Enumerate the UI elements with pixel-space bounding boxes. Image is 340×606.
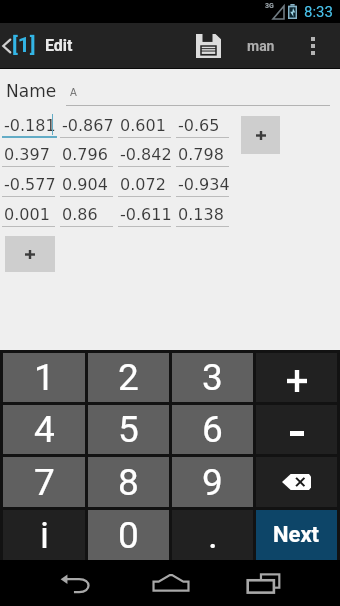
staticText: 0.397 <box>4 145 50 164</box>
staticText: [1] <box>12 33 36 58</box>
staticText: 0.072 <box>120 175 166 194</box>
button[interactable]: 1 <box>3 353 85 402</box>
staticText: Next <box>273 522 320 548</box>
staticText: -0.842 <box>120 145 172 164</box>
button[interactable]: 9 <box>172 457 253 507</box>
button[interactable]: Navigate up <box>0 23 46 68</box>
button[interactable]: 8 <box>88 457 169 507</box>
staticText: man <box>247 38 275 54</box>
button[interactable]: . <box>172 510 253 560</box>
staticText: 8:33 <box>304 3 333 21</box>
staticText: -0.65 <box>178 116 220 135</box>
button[interactable]: Next <box>256 510 337 560</box>
button[interactable]: 3 <box>172 353 253 402</box>
button[interactable]: 0.904 <box>60 172 116 200</box>
staticText: 3 <box>202 356 223 399</box>
staticText: 0.798 <box>178 145 224 164</box>
button[interactable]: 0.86 <box>60 202 116 230</box>
button[interactable]: -0.611 <box>118 202 174 230</box>
button[interactable]: Recent apps <box>228 562 298 604</box>
staticText: 3G <box>265 2 274 10</box>
button[interactable]: Add <box>5 236 55 272</box>
staticText: -0.181 <box>4 116 56 135</box>
staticText: 8 <box>118 461 139 504</box>
button[interactable]: -0.65 <box>176 113 232 141</box>
staticText: 9 <box>202 461 223 504</box>
staticText: 0.86 <box>62 205 98 224</box>
button[interactable]: More options <box>296 23 330 68</box>
button[interactable]: 0.138 <box>176 202 232 230</box>
button[interactable]: Home <box>136 562 206 604</box>
staticText: 4 <box>34 408 55 451</box>
staticText: 0.601 <box>120 116 166 135</box>
staticText: -0.611 <box>120 205 172 224</box>
staticText: 0.796 <box>62 145 108 164</box>
button[interactable] <box>0 75 340 105</box>
button[interactable]: 0.001 <box>2 202 58 230</box>
button[interactable]: 0.798 <box>176 142 232 170</box>
button[interactable]: 4 <box>3 405 85 454</box>
staticText: 0 <box>118 514 139 557</box>
button[interactable]: -0.842 <box>118 142 174 170</box>
button[interactable]: i <box>3 510 85 560</box>
staticText: 0.001 <box>4 205 50 224</box>
button[interactable]: 7 <box>3 457 85 507</box>
button[interactable] <box>256 457 337 507</box>
staticText: 0.138 <box>178 205 224 224</box>
button[interactable]: 0.072 <box>118 172 174 200</box>
button[interactable]: 0.796 <box>60 142 116 170</box>
button[interactable]: 0.397 <box>2 142 58 170</box>
staticText: -0.934 <box>178 175 230 194</box>
button[interactable]: Edit <box>45 23 105 68</box>
button[interactable]: 0 <box>88 510 169 560</box>
button[interactable]: 2 <box>88 353 169 402</box>
staticText: -0.867 <box>62 116 114 135</box>
button[interactable]: -0.934 <box>176 172 232 200</box>
button[interactable]: Back <box>40 562 110 604</box>
staticText: 2 <box>118 356 139 399</box>
staticText: 7 <box>34 461 55 504</box>
button[interactable]: Main <box>236 23 286 68</box>
button[interactable] <box>256 353 337 402</box>
button[interactable]: -0.181 <box>2 113 58 141</box>
staticText: Name <box>6 81 57 101</box>
staticText: A <box>70 87 77 99</box>
staticText: 5 <box>118 408 139 451</box>
button[interactable]: 0.601 <box>118 113 174 141</box>
button[interactable]: Add <box>241 116 280 154</box>
staticText: 6 <box>202 408 223 451</box>
button[interactable]: -0.867 <box>60 113 116 141</box>
button[interactable]: 6 <box>172 405 253 454</box>
staticText: . <box>208 514 218 557</box>
staticText: 1 <box>34 356 55 399</box>
staticText: -0.577 <box>4 175 56 194</box>
staticText: 0.904 <box>62 175 108 194</box>
staticText: i <box>40 514 49 557</box>
button[interactable]: -0.577 <box>2 172 58 200</box>
button[interactable] <box>256 405 337 454</box>
button[interactable]: Save <box>186 23 230 68</box>
staticText: Edit <box>45 36 73 55</box>
button[interactable]: 5 <box>88 405 169 454</box>
